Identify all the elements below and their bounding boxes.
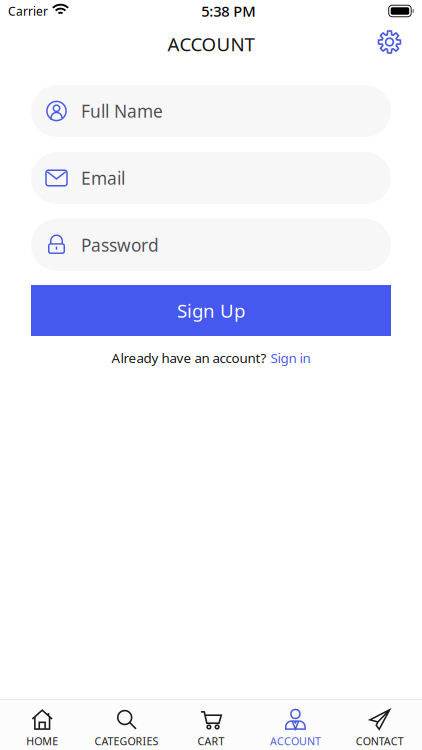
staticText: Carrier bbox=[8, 3, 48, 19]
staticText: Full Name bbox=[81, 99, 163, 122]
button[interactable]: Sign in bbox=[266, 349, 310, 367]
button[interactable]: HOME bbox=[0, 698, 84, 750]
button[interactable]: CART bbox=[169, 698, 253, 750]
staticText: Password bbox=[81, 233, 159, 256]
staticText: ACCOUNT bbox=[270, 734, 321, 748]
staticText: 5:38 PM bbox=[201, 1, 255, 21]
staticText: CATEGORIES bbox=[95, 734, 159, 748]
button[interactable]: CONTACT bbox=[338, 698, 422, 750]
staticText: CONTACT bbox=[356, 734, 404, 748]
staticText: Sign Up bbox=[177, 298, 245, 323]
staticText: Already have an account? bbox=[111, 349, 266, 367]
staticText: HOME bbox=[26, 734, 58, 748]
button[interactable]: Settings bbox=[366, 22, 422, 65]
staticText: CART bbox=[197, 734, 224, 748]
button[interactable]: Sign Up bbox=[31, 285, 391, 336]
staticText: ACCOUNT bbox=[167, 32, 254, 56]
button[interactable]: ACCOUNT bbox=[253, 698, 338, 750]
staticText: Email bbox=[81, 166, 125, 189]
button[interactable]: CATEGORIES bbox=[84, 698, 169, 750]
staticText: Sign in bbox=[270, 349, 310, 367]
